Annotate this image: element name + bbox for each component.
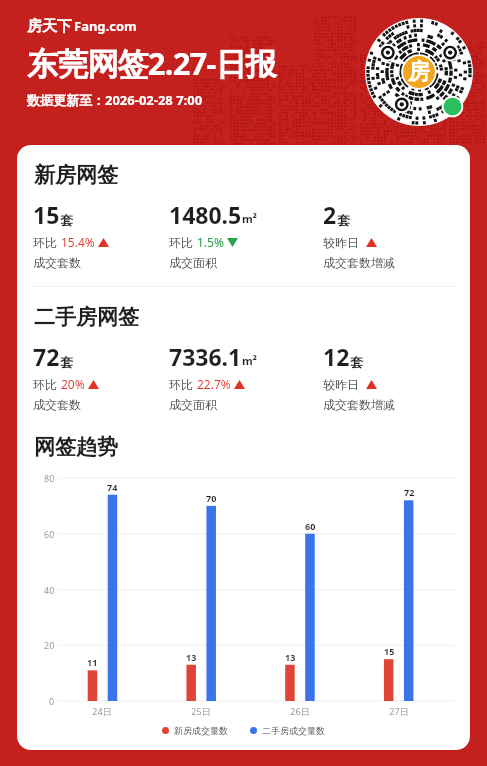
staticText: m² — [242, 353, 257, 368]
button[interactable]: 1480.5 — [169, 199, 323, 270]
staticText: 72 — [33, 341, 60, 372]
staticText: 7336.1 — [169, 341, 242, 372]
staticText: 12 — [323, 341, 350, 372]
staticText: 80 — [44, 472, 55, 484]
staticText: 70 — [206, 492, 217, 504]
staticText: 房天下 — [27, 17, 72, 36]
staticText: 成交套数增减 — [323, 397, 395, 412]
staticText: 二手房网签 — [34, 304, 139, 330]
staticText: 60 — [44, 528, 55, 540]
staticText: 较昨日 — [323, 376, 363, 392]
staticText: 较昨日 — [323, 234, 363, 250]
button[interactable]: Scan QR code — [365, 18, 473, 126]
button[interactable]: 2 — [323, 199, 454, 270]
button[interactable]: 12 — [323, 341, 454, 412]
staticText: 1480.5 — [169, 199, 242, 230]
button[interactable]: 72 — [33, 341, 169, 412]
button[interactable]: 二手房成交量数 — [250, 725, 325, 736]
staticText: 1.5% — [197, 234, 224, 250]
staticText: 11 — [87, 656, 98, 668]
staticText: 成交套数 — [33, 397, 81, 412]
staticText: 成交套数 — [33, 255, 81, 270]
button[interactable]: 新房成交量数 — [162, 725, 228, 736]
staticText: Fang.com — [74, 17, 137, 35]
staticText: 网签趋势 — [34, 434, 118, 460]
staticText: 房 — [408, 58, 430, 86]
staticText: 二手房成交量数 — [262, 725, 325, 736]
staticText: 数据更新至：2026-02-28 7:00 — [27, 91, 203, 109]
staticText: 15 — [33, 199, 60, 230]
staticText: 成交套数增减 — [323, 255, 395, 270]
staticText: 72 — [404, 486, 415, 498]
staticText: 环比 — [169, 376, 197, 392]
staticText: 2 — [323, 199, 337, 230]
staticText: 24日 — [92, 705, 112, 717]
staticText: 环比 — [169, 234, 197, 250]
staticText: 成交面积 — [169, 255, 217, 270]
staticText: 套 — [60, 212, 73, 228]
staticText: 22.7% — [197, 376, 231, 392]
staticText: 20 — [44, 639, 55, 651]
staticText: 环比 — [33, 376, 61, 392]
staticText: m² — [242, 211, 257, 226]
staticText: 成交面积 — [169, 397, 217, 412]
staticText: 套 — [337, 212, 350, 228]
staticText: 26日 — [290, 705, 310, 717]
staticText: 新房网签 — [34, 162, 118, 188]
staticText: 环比 — [33, 234, 61, 250]
staticText: 60 — [305, 520, 316, 532]
staticText: 13 — [186, 651, 197, 663]
staticText: 套 — [60, 354, 73, 370]
staticText: 15 — [384, 645, 395, 657]
staticText: 东莞网签2.27-日报 — [27, 42, 277, 84]
staticText: 25日 — [191, 705, 211, 717]
staticText: 20% — [61, 376, 85, 392]
staticText: 27日 — [389, 705, 409, 717]
staticText: 13 — [285, 651, 296, 663]
button[interactable]: 7336.1 — [169, 341, 323, 412]
staticText: 40 — [44, 584, 55, 596]
staticText: 新房成交量数 — [174, 725, 228, 736]
staticText: 74 — [107, 481, 118, 493]
staticText: 套 — [350, 354, 363, 370]
button[interactable]: 15 — [33, 199, 169, 270]
staticText: 15.4% — [61, 234, 95, 250]
staticText: 0 — [49, 695, 55, 707]
